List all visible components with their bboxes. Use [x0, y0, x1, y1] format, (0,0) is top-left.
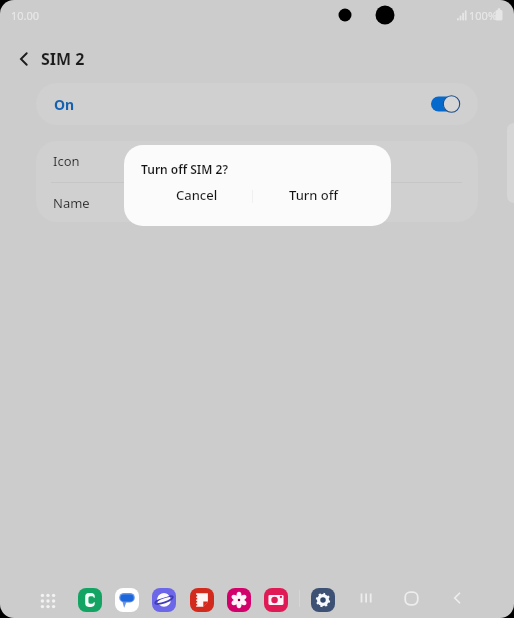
button[interactable]: On [36, 83, 478, 125]
button[interactable]: All apps [34, 587, 62, 615]
button[interactable]: Turn off [255, 183, 373, 207]
button[interactable]: Navigate up [8, 43, 40, 75]
staticText: On [54, 95, 75, 114]
button[interactable]: Camera [264, 588, 288, 612]
button[interactable]: Recent apps [352, 584, 380, 612]
button[interactable]: Back [443, 584, 471, 612]
button[interactable]: Home [397, 584, 425, 612]
button[interactable]: Settings [311, 588, 335, 612]
button[interactable]: Gallery [227, 588, 251, 612]
staticText: Turn off SIM 2? [141, 161, 228, 177]
button[interactable]: Phone [78, 588, 102, 612]
staticText: Cancel [176, 186, 218, 204]
button[interactable]: Internet [152, 588, 176, 612]
button[interactable]: Notes [190, 588, 214, 612]
button[interactable]: Cancel [138, 183, 256, 207]
button[interactable]: Name [36, 183, 478, 221]
staticText: Name [53, 194, 90, 212]
button[interactable]: Messages [115, 588, 139, 612]
staticText: Icon [53, 152, 80, 170]
staticText: Turn off [289, 186, 339, 204]
staticText: 100% [469, 8, 498, 23]
staticText: 10.00 [11, 8, 40, 23]
staticText: SIM 2 [41, 48, 85, 70]
button[interactable]: Icon [36, 141, 478, 182]
